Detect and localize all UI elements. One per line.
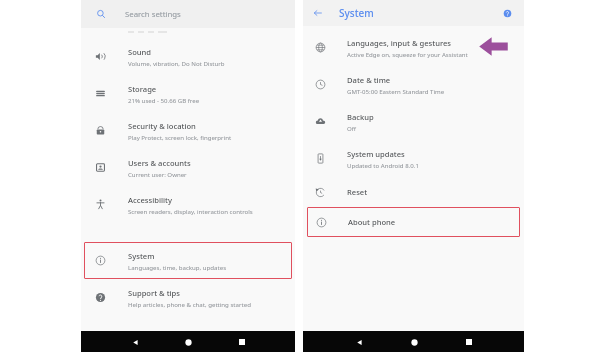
staticText: Languages, time, backup, updates — [128, 263, 227, 271]
button[interactable]: Accessibility — [81, 186, 295, 223]
staticText: System — [128, 251, 155, 261]
staticText: Off — [347, 124, 356, 132]
staticText: Accessibility — [128, 195, 172, 205]
button[interactable]: Back — [127, 334, 143, 350]
staticText: System updates — [347, 149, 405, 159]
button[interactable]: Recent apps — [234, 334, 250, 350]
button[interactable]: Home — [180, 334, 196, 350]
button[interactable]: System — [84, 242, 292, 279]
staticText: Volume, vibration, Do Not Disturb — [128, 59, 225, 67]
button[interactable]: Date & time — [303, 66, 524, 103]
button[interactable]: About phone — [307, 207, 520, 237]
staticText: Reset — [347, 187, 368, 197]
staticText: Backup — [347, 112, 374, 122]
button[interactable]: Backup — [303, 103, 524, 140]
staticText: Languages, input & gestures — [347, 38, 452, 48]
button[interactable]: Help — [499, 5, 515, 21]
staticText: Security & location — [128, 121, 196, 131]
button[interactable]: Recent apps — [461, 334, 477, 350]
button[interactable]: Languages, input & gestures — [303, 29, 524, 66]
staticText: 21% used - 50.66 GB free — [128, 96, 200, 104]
button[interactable]: Home — [406, 334, 422, 350]
staticText: About phone — [348, 217, 396, 227]
staticText: Date & time — [347, 75, 391, 85]
staticText: System — [339, 6, 374, 20]
staticText: Updated to Android 8.0.1 — [347, 161, 419, 169]
button[interactable]: Search settings — [81, 0, 295, 28]
staticText: Sound — [128, 47, 152, 57]
staticText: Help articles, phone & chat, getting sta… — [128, 300, 251, 308]
button[interactable]: Back — [351, 334, 367, 350]
button[interactable]: Back — [310, 5, 326, 21]
button[interactable]: Storage — [81, 75, 295, 112]
button[interactable]: System updates — [303, 140, 524, 177]
button[interactable]: Security & location — [81, 112, 295, 149]
staticText: Users & accounts — [128, 158, 191, 168]
button[interactable]: Sound — [81, 38, 295, 75]
staticText: Current user: Owner — [128, 170, 187, 178]
staticText: GMT-05:00 Eastern Standard Time — [347, 87, 445, 95]
staticText: Active Edge on, squeeze for your Assista… — [347, 50, 468, 58]
button[interactable]: Support & tips — [81, 279, 295, 316]
staticText: Search settings — [125, 9, 181, 20]
staticText: Storage — [128, 84, 157, 94]
button[interactable]: Reset — [303, 177, 524, 207]
staticText: Screen readers, display, interaction con… — [128, 207, 253, 215]
button[interactable]: Users & accounts — [81, 149, 295, 186]
staticText: Support & tips — [128, 288, 181, 298]
staticText: Play Protect, screen lock, fingerprint — [128, 133, 232, 141]
